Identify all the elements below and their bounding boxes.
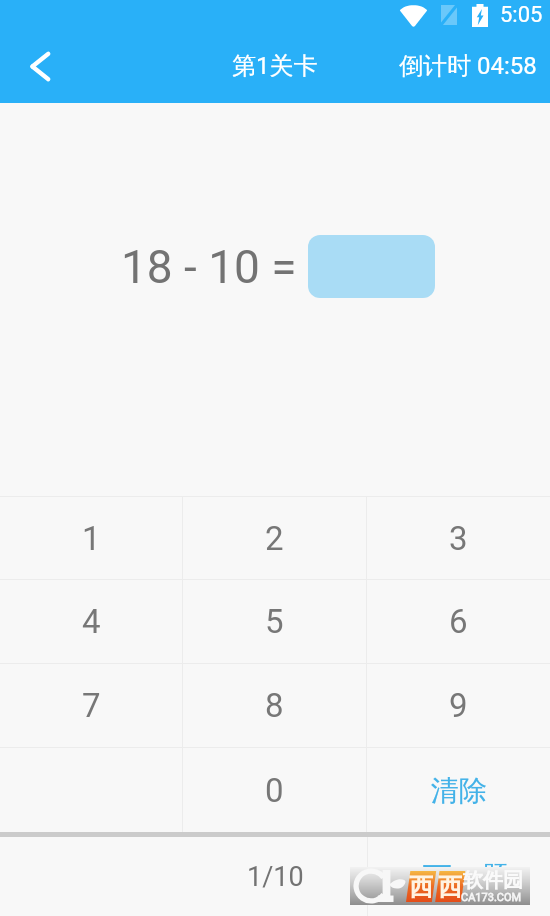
- button[interactable]: 0: [183, 748, 366, 832]
- staticText: 18 - 10 =: [121, 240, 297, 294]
- staticText: 2: [265, 519, 284, 558]
- staticText: 软件园: [463, 868, 523, 893]
- staticText: 1: [82, 519, 101, 558]
- button[interactable]: 8: [183, 664, 366, 747]
- button[interactable]: [308, 235, 435, 298]
- button[interactable]: 清除: [367, 748, 550, 832]
- staticText: 第1关卡: [232, 51, 318, 81]
- button[interactable]: 6: [367, 580, 550, 663]
- staticText: 3: [449, 519, 468, 558]
- button[interactable]: 1/10: [183, 837, 367, 916]
- button[interactable]: 5: [183, 580, 366, 663]
- staticText: 0: [265, 771, 284, 810]
- staticText: CA173.COM: [461, 891, 522, 904]
- staticText: 5: [265, 602, 284, 641]
- button[interactable]: 2: [183, 497, 366, 579]
- button[interactable]: 下一题: [368, 837, 550, 916]
- staticText: 西: [438, 872, 462, 901]
- staticText: 5:05: [500, 2, 543, 28]
- staticText: 1/10: [247, 861, 304, 893]
- button[interactable]: 7: [0, 664, 182, 747]
- staticText: 4: [82, 602, 101, 641]
- staticText: 6: [449, 602, 468, 641]
- button[interactable]: Back: [13, 40, 65, 92]
- button[interactable]: 3: [367, 497, 550, 579]
- staticText: 7: [82, 686, 101, 725]
- staticText: 9: [449, 686, 468, 725]
- button[interactable]: 1: [0, 497, 182, 579]
- button[interactable]: 9: [367, 664, 550, 747]
- staticText: 清除: [431, 773, 487, 808]
- staticText: 下一题: [423, 859, 510, 896]
- button[interactable]: 4: [0, 580, 182, 663]
- staticText: 倒计时 04:58: [399, 51, 537, 81]
- staticText: 西: [409, 872, 433, 901]
- staticText: 8: [265, 686, 284, 725]
